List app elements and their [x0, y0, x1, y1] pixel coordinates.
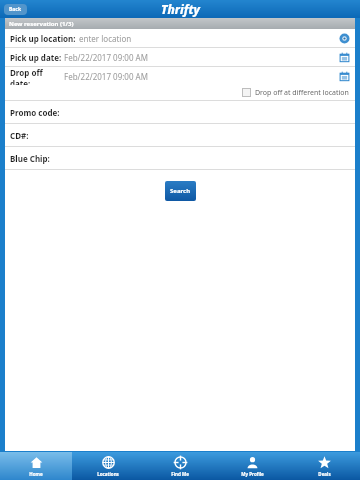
button[interactable]: Deals: [288, 452, 360, 480]
staticText: Deals: [318, 471, 331, 477]
button[interactable]: CD#:: [5, 124, 355, 146]
button[interactable]: Promo code:: [5, 101, 355, 123]
staticText: Drop off at different location: [255, 88, 349, 98]
button[interactable]: Home: [0, 452, 72, 480]
staticText: Promo code:: [10, 107, 60, 118]
staticText: Pick up date:: [10, 52, 64, 63]
staticText: Feb/22/2017 09:00 AM: [64, 71, 148, 82]
button[interactable]: Search: [165, 181, 196, 201]
button[interactable]: Choose date: [339, 52, 350, 63]
staticText: Drop off date:: [10, 67, 64, 85]
staticText: Locations: [97, 471, 119, 477]
staticText: Back: [9, 6, 22, 13]
button[interactable]: Pick up location:: [5, 29, 355, 47]
button[interactable]: Back: [4, 4, 27, 15]
button[interactable]: Pick up date:: [5, 48, 355, 66]
button[interactable]: Drop off date:: [5, 67, 355, 85]
staticText: enter location: [79, 33, 132, 44]
button[interactable]: Blue Chip:: [5, 147, 355, 169]
staticText: Home: [29, 471, 43, 477]
staticText: Search: [170, 187, 191, 195]
staticText: Find Me: [171, 471, 189, 477]
staticText: Feb/22/2017 09:00 AM: [64, 52, 148, 63]
button[interactable]: Find Me: [144, 452, 216, 480]
staticText: Blue Chip:: [10, 153, 50, 164]
staticText: Pick up location:: [10, 33, 76, 44]
button[interactable]: Use current location: [339, 33, 350, 44]
staticText: CD#:: [10, 130, 29, 141]
button[interactable]: Locations: [72, 452, 144, 480]
staticText: Thrifty: [161, 1, 200, 17]
staticText: My Profile: [241, 471, 264, 477]
button[interactable]: Drop off at different location: [5, 85, 355, 100]
button[interactable]: My Profile: [216, 452, 288, 480]
button[interactable]: Choose date: [339, 71, 350, 82]
staticText: New reservation (1/3): [9, 20, 74, 28]
